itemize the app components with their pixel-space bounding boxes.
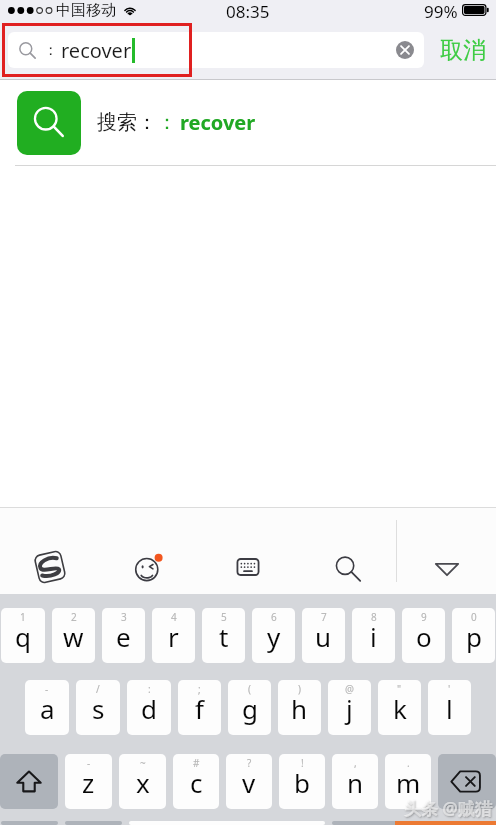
staticText: (	[248, 682, 251, 696]
button[interactable]: :	[127, 680, 171, 735]
staticText: ~	[140, 756, 146, 770]
button[interactable]: ?	[226, 754, 272, 809]
staticText: 3	[121, 610, 127, 624]
staticText: d	[141, 691, 157, 726]
button[interactable]: 0	[452, 608, 495, 663]
button[interactable]: Search	[297, 508, 396, 594]
staticText: w	[63, 619, 84, 654]
staticText: z	[82, 765, 95, 800]
staticText: )	[298, 682, 301, 696]
staticText: h	[291, 691, 308, 726]
button[interactable]: 6	[252, 608, 295, 663]
button[interactable]: 3	[102, 608, 145, 663]
staticText: recover	[180, 109, 256, 136]
staticText: #	[193, 756, 200, 770]
button[interactable]: !	[279, 754, 325, 809]
staticText: e	[116, 619, 131, 654]
button[interactable]: )	[278, 680, 321, 735]
button[interactable]: @	[328, 680, 371, 735]
staticText: 搜索：	[97, 110, 157, 135]
button[interactable]: ,	[332, 754, 378, 809]
button[interactable]	[65, 821, 122, 825]
button[interactable]: ~	[119, 754, 166, 809]
staticText: .	[407, 756, 410, 770]
staticText: 5	[221, 610, 227, 624]
staticText: :	[148, 682, 151, 696]
staticText: ?	[247, 756, 252, 770]
button[interactable]: #	[173, 754, 219, 809]
staticText: c	[190, 765, 203, 800]
staticText: q	[15, 619, 31, 654]
staticText: "	[397, 682, 402, 696]
staticText: 2	[71, 610, 77, 624]
button[interactable]: 5	[202, 608, 245, 663]
button[interactable]: ;	[178, 680, 221, 735]
button[interactable]: Shift	[0, 754, 58, 809]
button[interactable]: Hide keyboard	[397, 508, 496, 594]
button[interactable]: -	[65, 754, 112, 809]
staticText: 8	[371, 610, 377, 624]
button[interactable]	[332, 821, 495, 825]
button[interactable]: 1	[1, 608, 45, 663]
staticText: l	[446, 691, 453, 726]
staticText: @	[345, 682, 354, 696]
staticText: 9	[421, 610, 427, 624]
button[interactable]: ：	[8, 32, 424, 68]
staticText: j	[346, 691, 353, 726]
button[interactable]: .	[385, 754, 431, 809]
staticText: m	[396, 765, 421, 800]
staticText: ：	[43, 41, 58, 60]
staticText: f	[195, 691, 204, 726]
button[interactable]: 2	[52, 608, 95, 663]
staticText: g	[242, 691, 258, 726]
button[interactable]: 取消	[424, 23, 496, 77]
staticText: ,	[354, 756, 357, 770]
button[interactable]: 搜索：	[0, 80, 496, 165]
button[interactable]: "	[378, 680, 421, 735]
button[interactable]: 7	[302, 608, 345, 663]
staticText: 0	[471, 610, 477, 624]
button[interactable]: 8	[352, 608, 395, 663]
staticText: 99%	[424, 0, 458, 20]
staticText: 1	[20, 610, 26, 624]
button[interactable]: Keyboard layout	[198, 508, 297, 594]
staticText: s	[92, 691, 105, 726]
staticText: i	[370, 619, 377, 654]
staticText: x	[136, 765, 150, 800]
staticText: v	[242, 765, 256, 800]
staticText: b	[294, 765, 310, 800]
staticText: 取消	[440, 36, 486, 65]
staticText: -	[87, 756, 91, 770]
staticText: a	[40, 691, 55, 726]
staticText: /	[96, 682, 100, 696]
staticText: y	[267, 619, 281, 654]
staticText: 7	[321, 610, 327, 624]
button[interactable]: 4	[152, 608, 195, 663]
button[interactable]: '	[428, 680, 471, 735]
button[interactable]: 9	[402, 608, 445, 663]
staticText: n	[347, 765, 364, 800]
staticText: 中国移动	[56, 1, 116, 20]
staticText: k	[393, 691, 407, 726]
button[interactable]: -	[25, 680, 69, 735]
staticText: 4	[171, 610, 177, 624]
staticText: u	[315, 619, 332, 654]
staticText: 08:35	[226, 0, 270, 20]
button[interactable]: (	[228, 680, 271, 735]
staticText: p	[466, 619, 482, 654]
button[interactable]: /	[76, 680, 120, 735]
staticText: 6	[271, 610, 277, 624]
staticText: ;	[198, 682, 201, 696]
staticText: recover	[61, 37, 132, 64]
staticText: 头条 @贼猎	[404, 797, 492, 820]
staticText: t	[219, 619, 229, 654]
button[interactable]	[1, 821, 58, 825]
staticText: -	[45, 682, 49, 696]
button[interactable]: Sogou input method	[0, 508, 99, 594]
button[interactable]: Backspace	[438, 754, 496, 809]
staticText: !	[301, 756, 304, 770]
other: Clear text	[396, 41, 414, 59]
button[interactable]: Emoji	[99, 508, 198, 594]
staticText: ：	[157, 110, 177, 135]
